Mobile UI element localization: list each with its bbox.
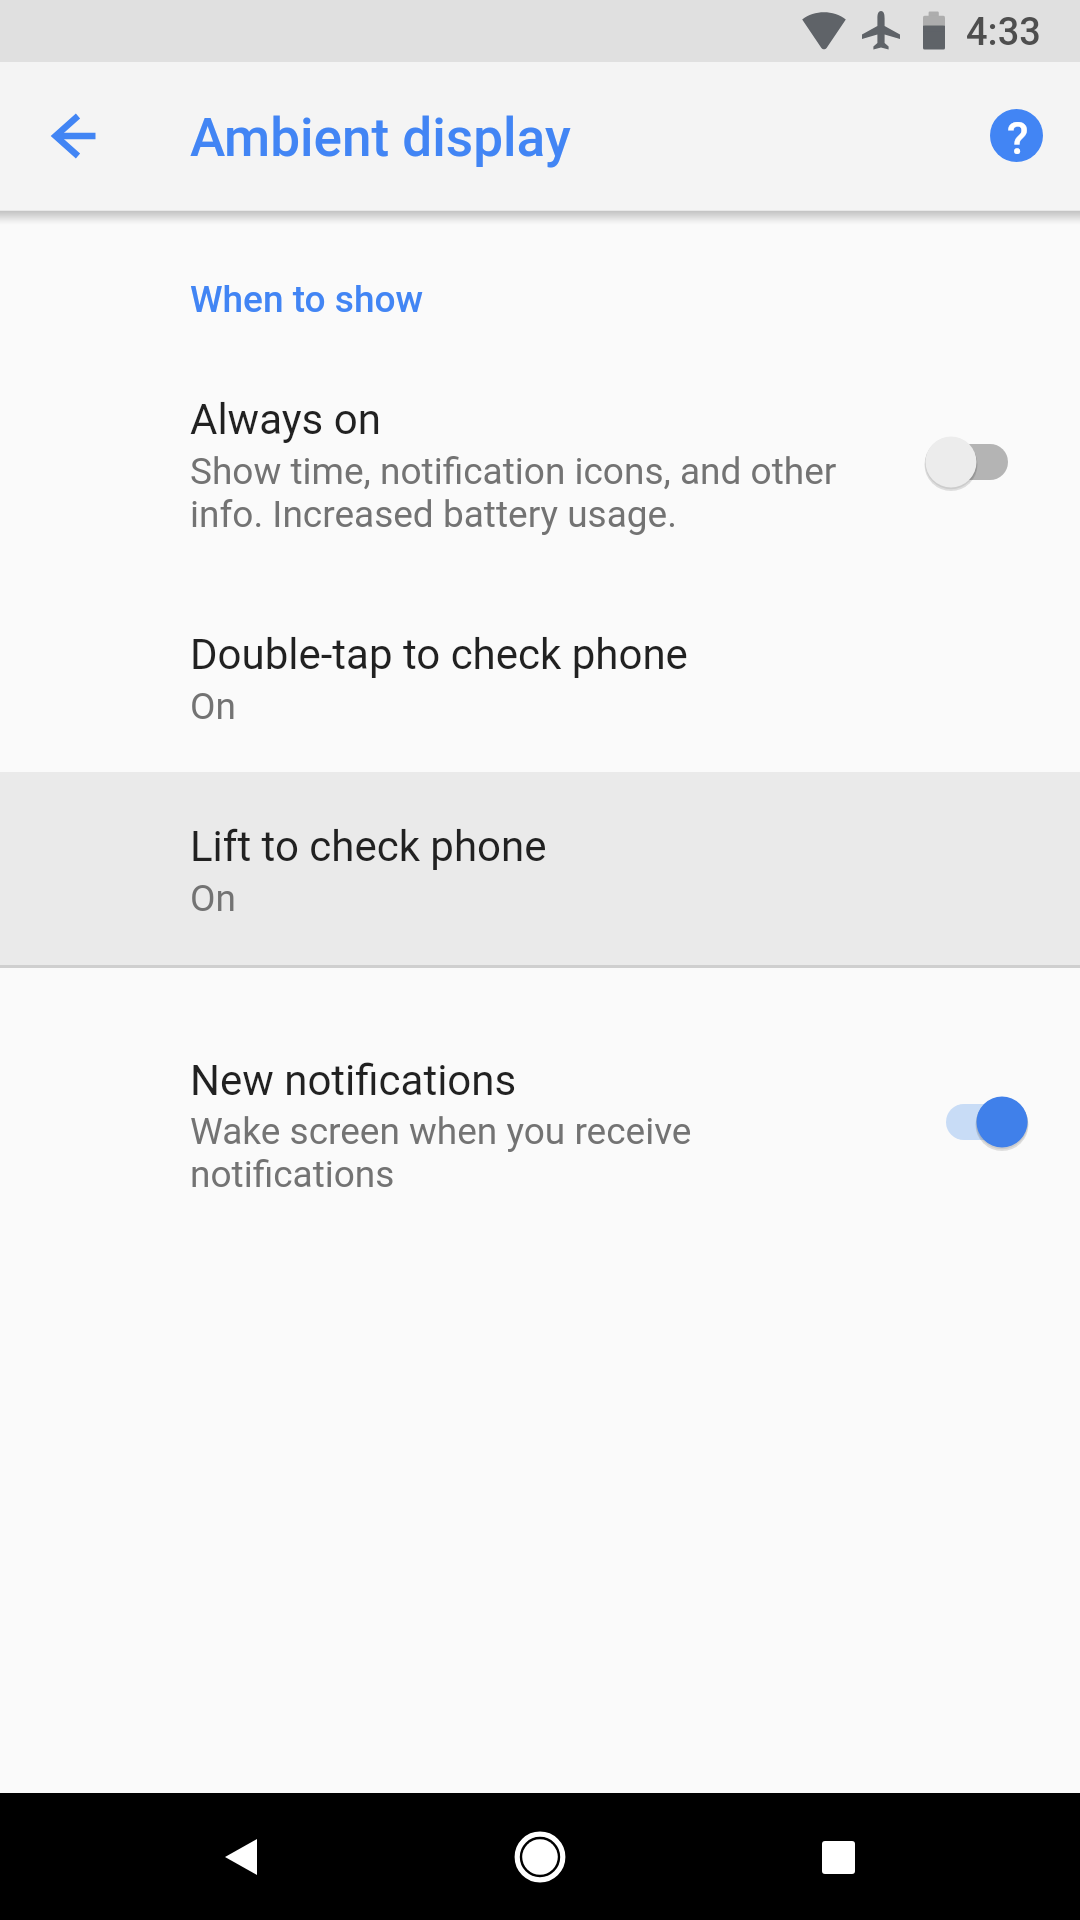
- button[interactable]: Help: [990, 109, 1043, 162]
- button[interactable]: [0, 580, 1080, 772]
- button[interactable]: [0, 772, 1080, 965]
- button[interactable]: [0, 1008, 1080, 1240]
- button[interactable]: Toggle, on: [920, 1072, 1060, 1172]
- staticText: Wake screen when you receive notificatio…: [190, 1110, 692, 1196]
- staticText: On: [190, 877, 236, 920]
- staticText: When to show: [190, 278, 424, 321]
- button[interactable]: Back: [201, 1817, 281, 1897]
- staticText: Lift to check phone: [190, 822, 547, 871]
- button[interactable]: Navigate up: [30, 89, 124, 183]
- staticText: On: [190, 685, 236, 728]
- button[interactable]: Home: [500, 1817, 580, 1897]
- staticText: 4:33: [966, 10, 1041, 55]
- staticText: New notifications: [190, 1056, 517, 1105]
- staticText: Always on: [190, 395, 381, 444]
- button[interactable]: Recent apps: [798, 1817, 878, 1897]
- staticText: ?: [1007, 113, 1029, 162]
- button[interactable]: Toggle, off: [900, 412, 1040, 512]
- staticText: Double-tap to check phone: [190, 630, 688, 679]
- staticText: Ambient display: [190, 107, 571, 169]
- button[interactable]: [0, 352, 1080, 580]
- staticText: Show time, notification icons, and other…: [190, 450, 837, 536]
